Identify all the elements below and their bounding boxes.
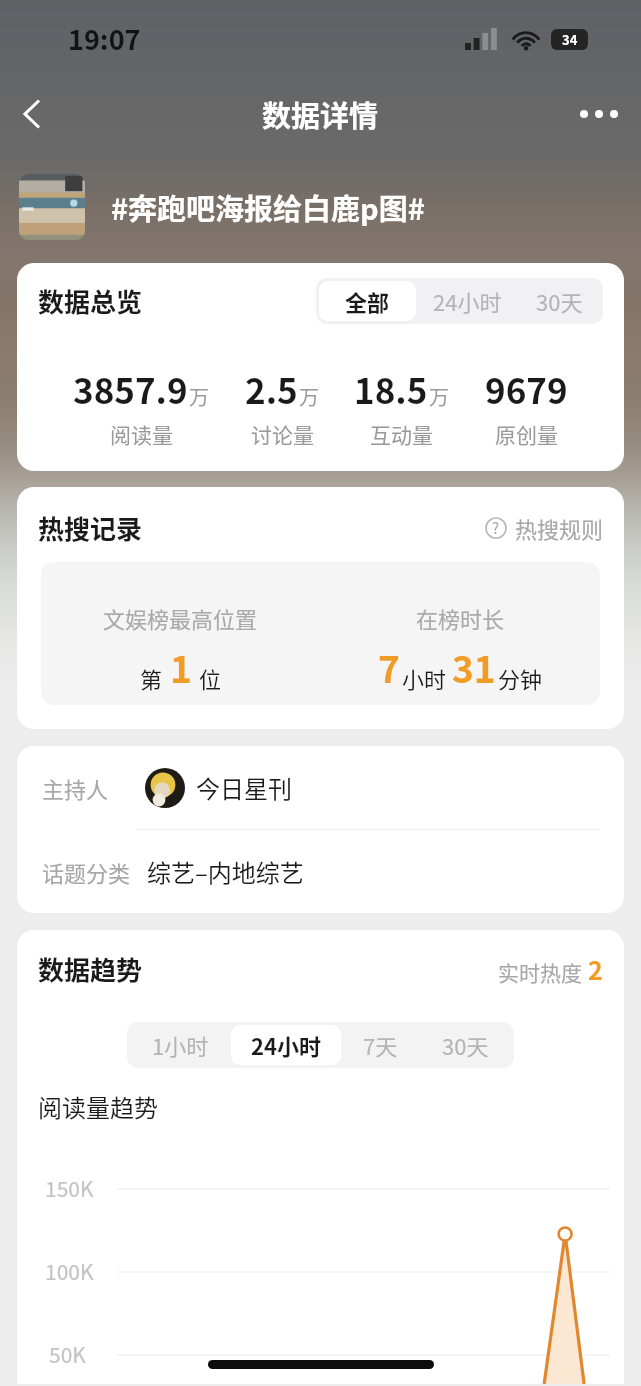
staticText: 31 bbox=[452, 640, 496, 694]
staticText: 小时 bbox=[402, 662, 447, 694]
staticText: 24小时 bbox=[433, 285, 502, 317]
staticText: 万 bbox=[429, 382, 449, 411]
staticText: 综艺–内地综艺 bbox=[147, 854, 304, 889]
staticText: 阅读量趋势 bbox=[38, 1089, 158, 1124]
staticText: 1小时 bbox=[152, 1029, 209, 1061]
staticText: 热搜规则 bbox=[515, 512, 604, 544]
staticText: 7 bbox=[378, 640, 400, 694]
staticText: 位 bbox=[199, 662, 222, 694]
staticText: #奔跑吧海报给白鹿p图# bbox=[111, 186, 425, 228]
staticText: 主持人 bbox=[42, 772, 109, 804]
staticText: 阅读量 bbox=[110, 419, 173, 449]
button[interactable]: 24小时 bbox=[416, 281, 519, 321]
staticText: ? bbox=[492, 517, 500, 539]
staticText: 万 bbox=[189, 382, 209, 411]
button[interactable]: 主持人 bbox=[42, 746, 600, 829]
staticText: 数据趋势 bbox=[38, 950, 143, 988]
staticText: 19:07 bbox=[68, 19, 141, 58]
button[interactable]: 24小时 bbox=[231, 1025, 341, 1065]
staticText: 互动量 bbox=[370, 419, 433, 449]
staticText: 7天 bbox=[363, 1029, 398, 1061]
staticText: 9679 bbox=[485, 363, 568, 414]
staticText: 实时热度 bbox=[498, 957, 582, 987]
button[interactable]: More options bbox=[571, 86, 627, 142]
staticText: 话题分类 bbox=[42, 856, 131, 888]
staticText: 50K bbox=[49, 1339, 86, 1369]
staticText: 150K bbox=[45, 1173, 94, 1203]
staticText: 分钟 bbox=[498, 662, 543, 694]
staticText: 数据总览 bbox=[38, 282, 143, 320]
button[interactable]: 30天 bbox=[420, 1025, 511, 1065]
staticText: 2 bbox=[588, 951, 603, 987]
staticText: 万 bbox=[299, 382, 319, 411]
button[interactable]: 话题分类 bbox=[42, 830, 600, 913]
staticText: 30天 bbox=[536, 285, 583, 317]
staticText: 全部 bbox=[345, 285, 390, 317]
button[interactable]: 全部 bbox=[319, 281, 416, 321]
staticText: 30天 bbox=[442, 1029, 489, 1061]
staticText: 3857.9 bbox=[73, 363, 188, 414]
staticText: 原创量 bbox=[495, 419, 558, 449]
button[interactable]: #奔跑吧海报给白鹿p图# bbox=[19, 150, 641, 263]
staticText: 1 bbox=[170, 640, 192, 694]
button[interactable]: 30天 bbox=[519, 281, 600, 321]
staticText: 热搜记录 bbox=[38, 509, 143, 547]
button[interactable]: Back bbox=[4, 86, 60, 142]
staticText: 今日星刊 bbox=[196, 770, 292, 805]
staticText: 在榜时长 bbox=[416, 602, 505, 634]
staticText: 数据详情 bbox=[262, 93, 379, 135]
button[interactable]: 1小时 bbox=[130, 1025, 231, 1065]
staticText: 第 bbox=[140, 662, 163, 694]
staticText: 2.5 bbox=[245, 363, 298, 414]
staticText: 34 bbox=[562, 30, 578, 49]
button[interactable]: 7天 bbox=[341, 1025, 420, 1065]
staticText: 24小时 bbox=[251, 1029, 321, 1061]
staticText: 讨论量 bbox=[251, 419, 314, 449]
staticText: 文娱榜最高位置 bbox=[103, 602, 258, 634]
button[interactable]: ? bbox=[485, 512, 604, 544]
staticText: 100K bbox=[45, 1256, 94, 1286]
staticText: 18.5 bbox=[354, 363, 428, 414]
